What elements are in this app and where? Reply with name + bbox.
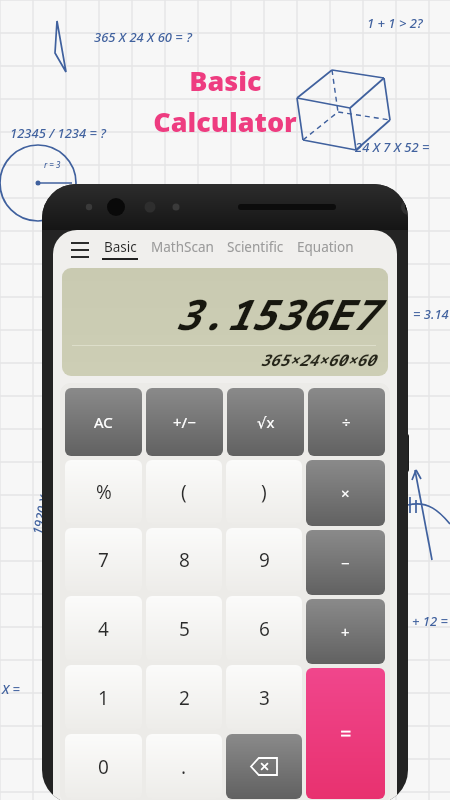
button[interactable]: 0 — [65, 734, 142, 799]
staticText: × — [341, 483, 350, 503]
button[interactable]: % — [65, 460, 142, 524]
staticText: + — [341, 622, 350, 642]
staticText: 0 — [98, 754, 109, 780]
button[interactable]: AC — [65, 388, 142, 456]
staticText: 8 — [179, 547, 190, 573]
staticText: √x — [257, 412, 275, 432]
staticText: 6 — [259, 616, 270, 642]
staticText: . — [181, 754, 187, 780]
staticText: 365×24×60×60 — [260, 349, 376, 371]
staticText: 24 X 7 X 52 = — [355, 138, 430, 156]
button[interactable]: 5 — [146, 596, 222, 661]
button[interactable]: +/− — [146, 388, 223, 456]
button[interactable]: 3 — [226, 665, 302, 730]
button[interactable]: 2 — [146, 665, 222, 730]
staticText: 2 — [179, 685, 190, 711]
staticText: ) — [261, 479, 267, 505]
staticText: − — [341, 553, 350, 573]
staticText: Calculator — [153, 103, 297, 140]
staticText: 3 — [259, 685, 270, 711]
staticText: = 3.14 — [413, 305, 449, 323]
staticText: 1 — [98, 685, 109, 711]
staticText: 12345 / 1234 = ? — [10, 124, 107, 142]
button[interactable]: 6 — [226, 596, 302, 661]
button[interactable]: ÷ — [308, 388, 385, 456]
staticText: 365 X 24 X 60 = ? — [94, 28, 192, 46]
staticText: AC — [94, 412, 113, 432]
staticText: 5 — [179, 616, 190, 642]
staticText: MathScan — [151, 238, 214, 256]
staticText: Equation — [297, 238, 354, 256]
staticText: 9 — [259, 547, 270, 573]
button[interactable]: . — [146, 734, 222, 799]
button[interactable]: − — [306, 530, 385, 595]
button[interactable]: ( — [146, 460, 222, 524]
button[interactable]: + — [306, 599, 385, 664]
button[interactable]: 7 — [65, 528, 142, 592]
button[interactable]: = — [306, 668, 385, 799]
button[interactable]: Equation — [296, 238, 355, 260]
staticText: ÷ — [342, 412, 351, 432]
staticText: Basic — [189, 62, 262, 99]
staticText: Basic — [104, 238, 137, 256]
staticText: 1 + 1 > 2? — [367, 14, 423, 32]
staticText: 3.1536E7 — [174, 285, 376, 342]
button[interactable]: MathScan — [150, 238, 215, 260]
staticText: = — [340, 720, 352, 747]
staticText: + 12 = — [412, 612, 448, 630]
staticText: X = — [2, 680, 24, 698]
button[interactable]: 8 — [146, 528, 222, 592]
button[interactable]: Backspace — [226, 734, 302, 799]
staticText: Scientific — [227, 238, 284, 256]
button[interactable]: √x — [227, 388, 304, 456]
staticText: r = 3 — [44, 159, 61, 170]
button[interactable]: × — [306, 460, 385, 526]
staticText: 7 — [98, 547, 109, 573]
staticText: ( — [181, 479, 187, 505]
button[interactable]: 1 — [65, 665, 142, 730]
button[interactable]: 4 — [65, 596, 142, 661]
button[interactable]: Menu — [67, 236, 93, 262]
button[interactable]: 9 — [226, 528, 302, 592]
button[interactable]: Basic — [101, 238, 139, 260]
button[interactable]: Scientific — [226, 238, 285, 260]
staticText: % — [96, 479, 112, 505]
button[interactable]: ) — [226, 460, 302, 524]
staticText: 1920 X 1080 — [28, 462, 60, 536]
staticText: 4 — [98, 616, 109, 642]
staticText: +/− — [173, 412, 196, 432]
